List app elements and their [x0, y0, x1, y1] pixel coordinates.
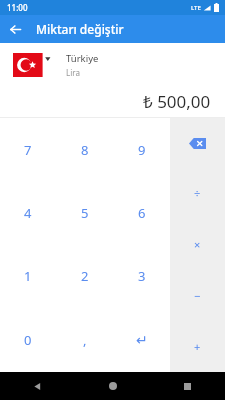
staticText: ↵	[136, 332, 148, 348]
button[interactable]: 7	[0, 118, 56, 181]
staticText: 9	[138, 141, 146, 159]
staticText: +	[194, 339, 201, 354]
staticText: 1	[24, 267, 32, 285]
staticText: ÷	[194, 186, 201, 201]
button[interactable]: 4	[0, 181, 56, 244]
button[interactable]: ,	[56, 308, 113, 372]
staticText: Miktarı değiştir	[36, 21, 124, 37]
staticText: ×	[194, 237, 201, 252]
button[interactable]: +	[170, 321, 225, 372]
staticText: Türkiye	[66, 52, 99, 65]
staticText: ,	[83, 331, 87, 349]
button[interactable]: 9	[113, 118, 170, 181]
button[interactable]: 2	[56, 244, 113, 308]
button[interactable]: ÷	[170, 168, 225, 219]
staticText: 6	[138, 204, 146, 222]
button[interactable]: ↵	[113, 308, 170, 372]
button[interactable]: Back	[0, 15, 30, 43]
staticText: −	[194, 288, 201, 303]
button[interactable]: −	[170, 270, 225, 321]
button[interactable]: 1	[0, 244, 56, 308]
staticText: 3	[138, 267, 146, 285]
staticText: ₺ 500,00	[143, 90, 211, 113]
button[interactable]: Backspace	[170, 118, 225, 168]
button[interactable]: 8	[56, 118, 113, 181]
staticText: 5	[81, 204, 89, 222]
staticText: Lira	[66, 67, 80, 78]
button[interactable]: 0	[0, 308, 56, 372]
button[interactable]: Türkiye	[0, 43, 225, 86]
staticText: 11:00	[7, 2, 28, 13]
staticText: 8	[81, 141, 89, 159]
staticText: 0	[24, 331, 32, 349]
staticText: LTE	[191, 4, 201, 12]
staticText: 7	[24, 141, 32, 159]
button[interactable]: 6	[113, 181, 170, 244]
button[interactable]: 5	[56, 181, 113, 244]
button[interactable]: ×	[170, 219, 225, 270]
button[interactable]: Home	[75, 372, 150, 400]
staticText: 4	[24, 204, 32, 222]
staticText: 2	[81, 267, 89, 285]
button[interactable]: 3	[113, 244, 170, 308]
button[interactable]: Back	[0, 372, 75, 400]
button[interactable]: Recents	[150, 372, 225, 400]
